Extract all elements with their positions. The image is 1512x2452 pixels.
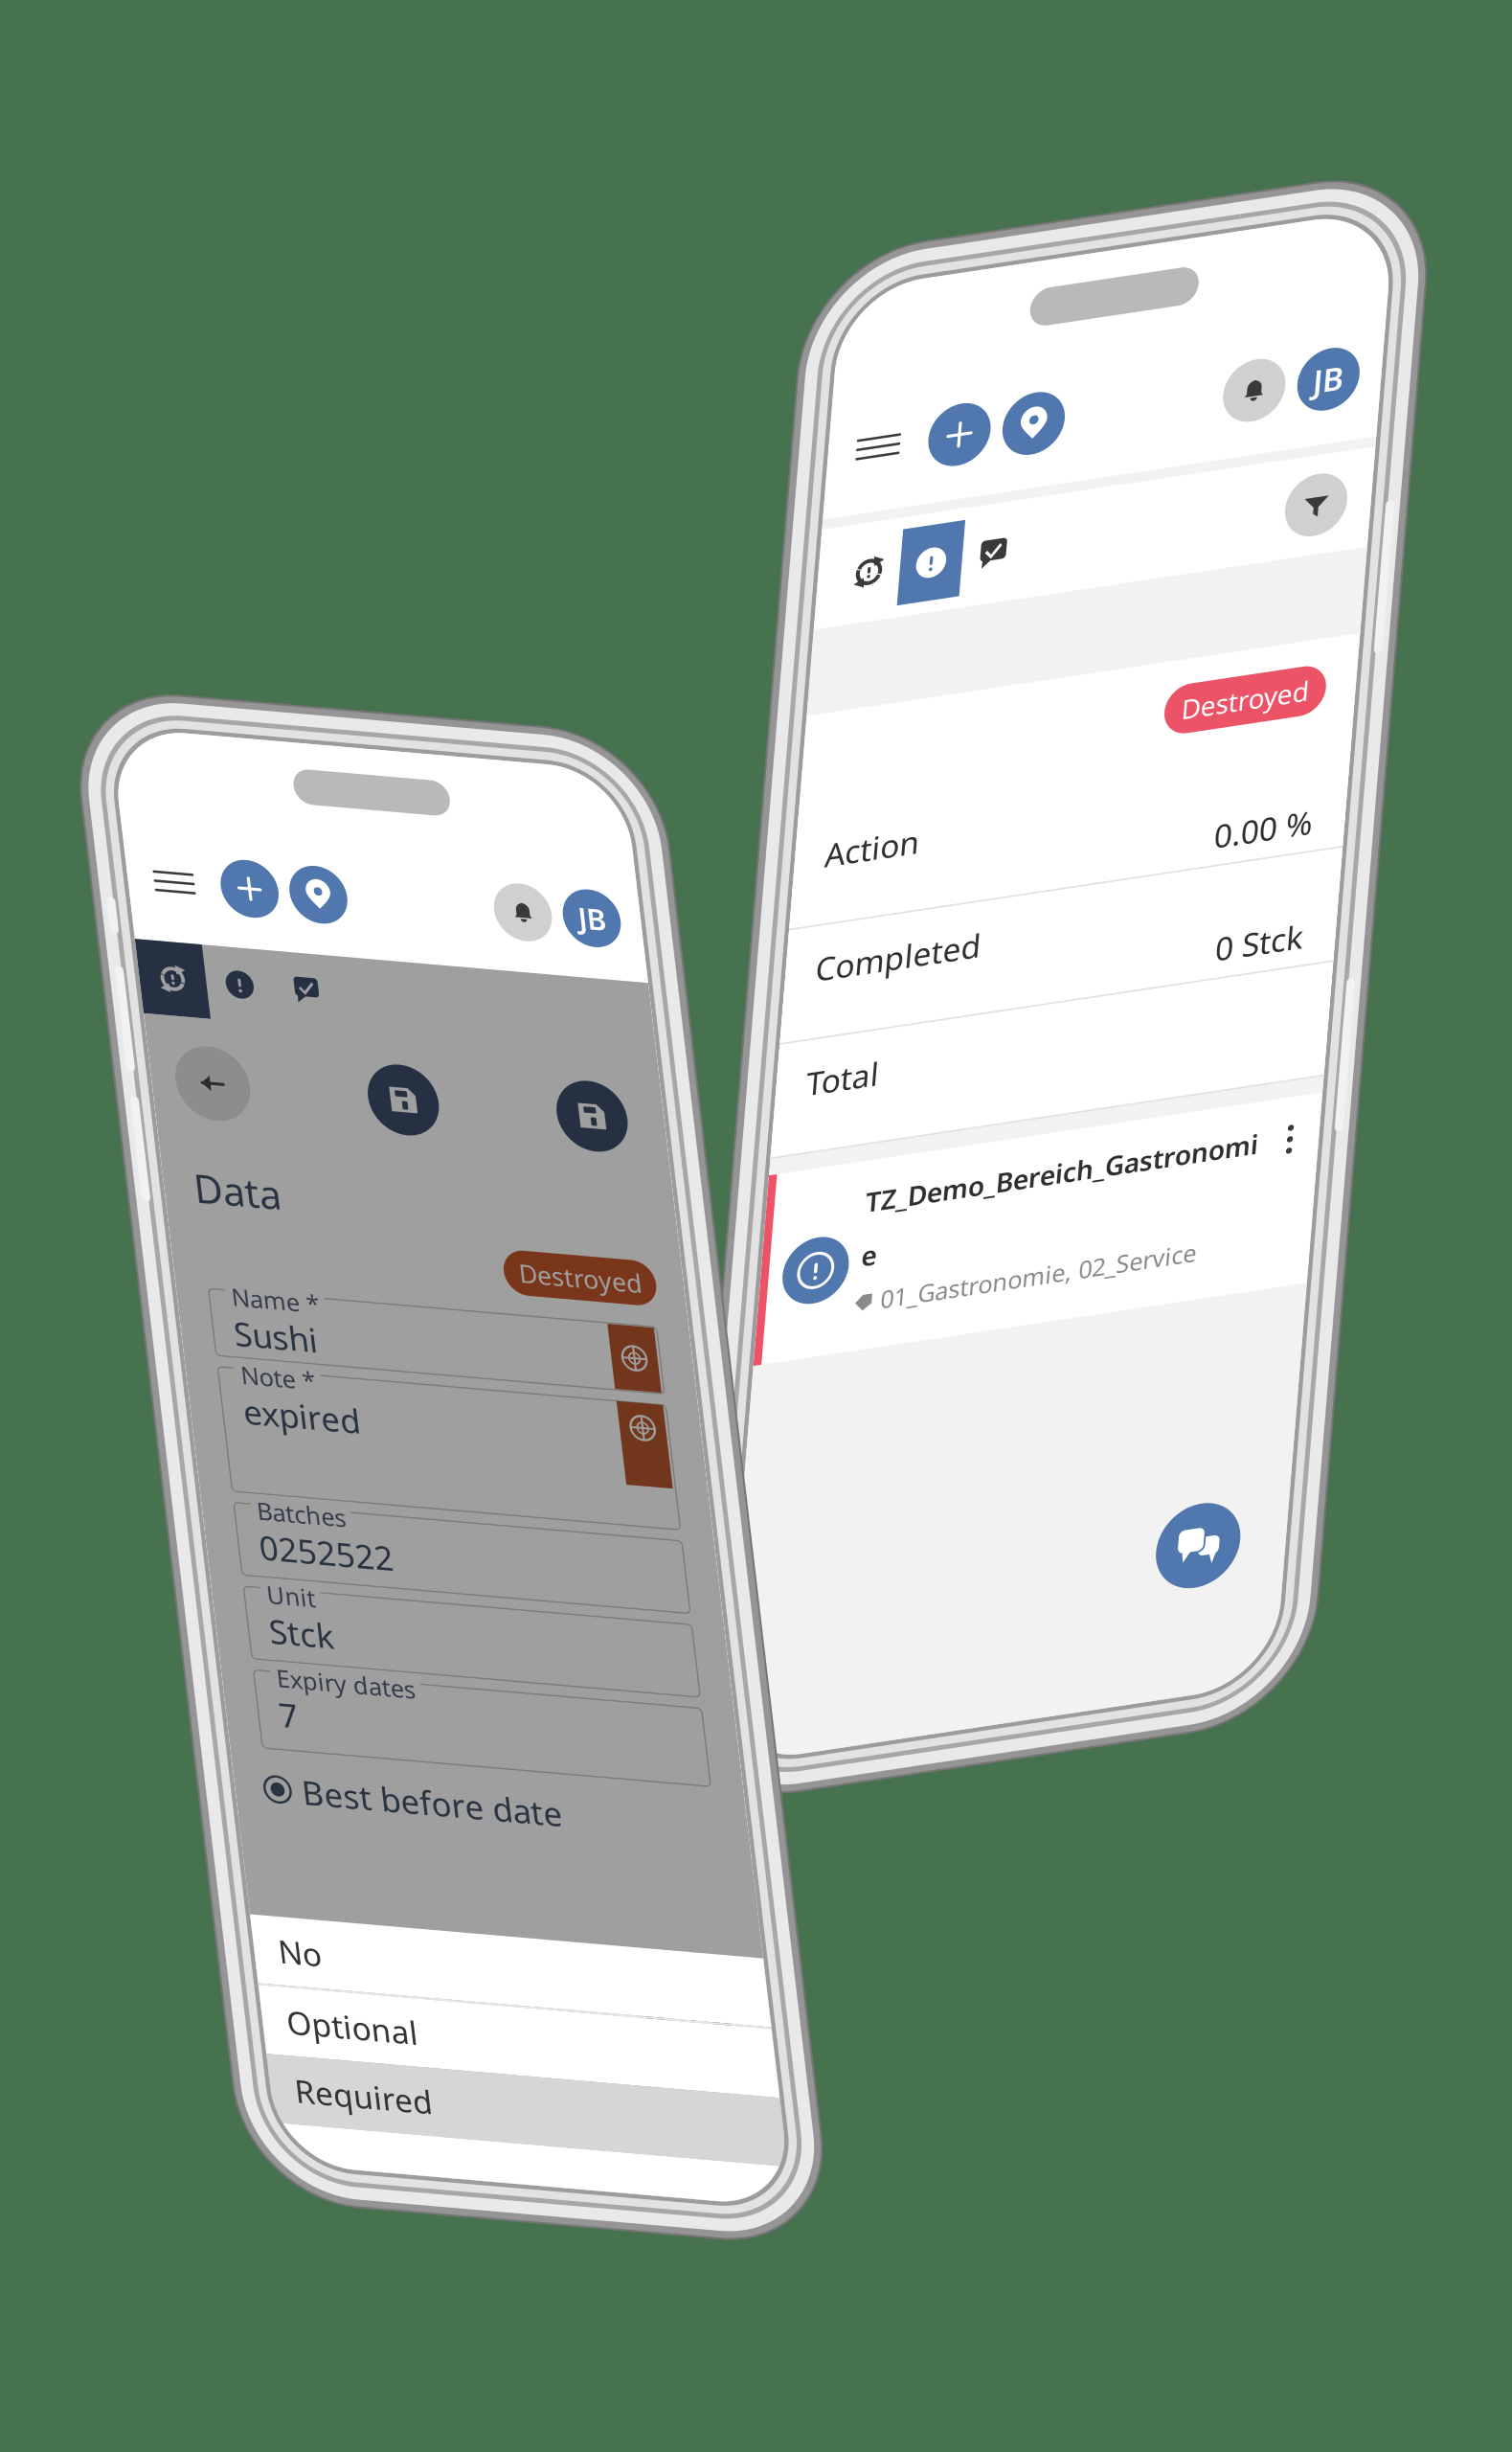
button[interactable]: Total [781, 1003, 1334, 1118]
button[interactable]: Unit [227, 1606, 676, 1678]
button[interactable]: Translate note [626, 1386, 673, 1470]
staticText: Completed [811, 911, 977, 953]
staticText: Stck [248, 1626, 313, 1670]
button[interactable]: Messages [578, 1955, 671, 2048]
staticText: Action [811, 797, 906, 839]
button[interactable]: Alerts [262, 961, 329, 1035]
button[interactable]: Note * [227, 1386, 676, 1511]
staticText: Best before date [262, 1786, 522, 1830]
button[interactable]: Save as [600, 1065, 671, 1136]
staticText: Batches [250, 1512, 339, 1544]
button[interactable]: Notifications [561, 872, 619, 929]
staticText: Destroyed [543, 1248, 665, 1282]
staticText: Required [219, 2089, 357, 2132]
button[interactable]: Save [411, 1065, 482, 1136]
button[interactable]: Tasks [925, 500, 987, 576]
staticText: Unit [250, 1595, 299, 1628]
staticText: Total [811, 1025, 884, 1068]
button[interactable]: Status [803, 1204, 869, 1270]
button[interactable]: Completed [781, 889, 1334, 1003]
button[interactable]: Batches [227, 1522, 676, 1594]
button[interactable]: Profile [630, 872, 688, 929]
button[interactable]: Menu [215, 879, 267, 922]
staticText: Data [225, 1181, 312, 1233]
staticText: 0.00 % [1204, 837, 1302, 879]
button[interactable]: Filter [1248, 507, 1310, 569]
button[interactable]: TZ_Demo_Bereich_Gastronomi [781, 1134, 1334, 1324]
staticText: Destroyed [1160, 707, 1287, 742]
staticText: Note * [250, 1376, 324, 1408]
button[interactable]: Messages [1204, 1532, 1288, 1616]
button[interactable]: Notifications [1176, 381, 1238, 444]
button[interactable]: Add [288, 872, 345, 929]
staticText: No [219, 1950, 262, 1992]
staticText: expired [248, 1407, 365, 1451]
button[interactable]: Expiry dates [227, 1689, 676, 1767]
staticText: Sushi [248, 1328, 331, 1372]
button[interactable]: Required [195, 2076, 708, 2145]
staticText: 0252522 [248, 1542, 382, 1586]
button[interactable]: Profile [1250, 381, 1312, 444]
button[interactable]: Location [955, 381, 1018, 444]
staticText: TZ_Demo_Bereich_Gastronomi [881, 1158, 1274, 1193]
button[interactable]: Name * [227, 1308, 676, 1375]
button[interactable]: Optional [195, 2007, 708, 2076]
staticText: Name * [250, 1298, 338, 1330]
staticText: 01_Gastronomie, 02_Service [904, 1260, 1220, 1292]
staticText: JB [645, 881, 673, 920]
button[interactable]: Back [219, 1063, 293, 1138]
button[interactable]: Sync [195, 961, 262, 1035]
staticText: Expiry dates [250, 1679, 389, 1711]
button[interactable]: Alerts [863, 500, 925, 576]
button[interactable]: No [195, 1937, 708, 2005]
button[interactable]: Add [881, 381, 943, 444]
button[interactable]: Translate name [626, 1309, 673, 1374]
staticText: 0 Stck [1214, 951, 1302, 994]
staticText: Optional [219, 2020, 350, 2063]
staticText: JB [1266, 391, 1297, 434]
button[interactable]: Action [781, 775, 1334, 889]
button[interactable]: Sync [801, 500, 863, 576]
button[interactable]: Menu [803, 390, 859, 435]
button[interactable]: Best before date [195, 1786, 708, 1830]
staticText: 7 [248, 1710, 267, 1754]
